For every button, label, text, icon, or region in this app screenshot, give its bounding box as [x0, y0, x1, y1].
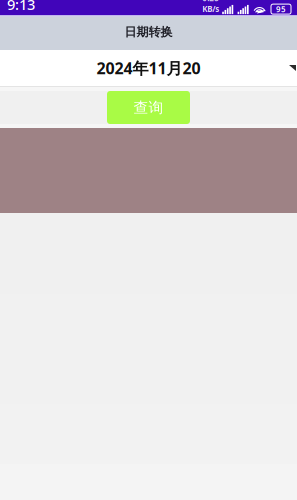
button[interactable]: 查询 [107, 91, 190, 124]
staticText: 95 [276, 4, 286, 14]
staticText: 0.25 [202, 0, 219, 3]
staticText: KB/s [202, 3, 219, 14]
button[interactable]: 2024年11月20 [0, 50, 297, 86]
staticText: 9:13 [7, 0, 35, 14]
staticText: 2024年11月20 [96, 57, 200, 79]
staticText: 查询 [133, 98, 163, 116]
staticText: 日期转换 [124, 25, 172, 39]
